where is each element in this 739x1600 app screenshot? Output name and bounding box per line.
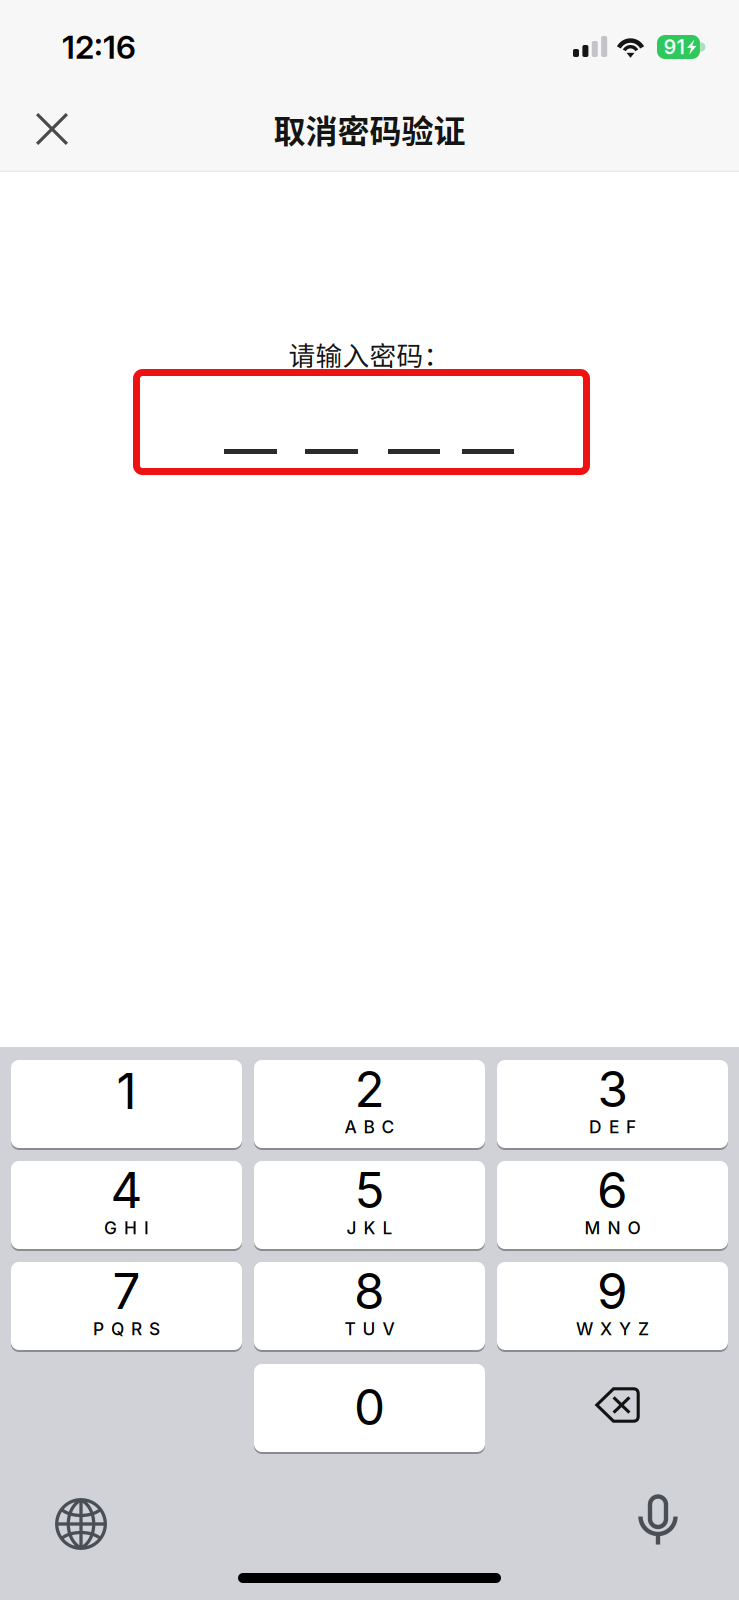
button[interactable]: 3 — [497, 1060, 728, 1148]
staticText: 5 — [354, 1160, 384, 1220]
staticText: PQRS — [93, 1318, 160, 1339]
staticText: 7 — [112, 1261, 140, 1321]
staticText: GHI — [104, 1217, 149, 1238]
button[interactable]: 8 — [254, 1262, 485, 1350]
button[interactable]: Delete — [502, 1361, 733, 1449]
staticText: 6 — [597, 1160, 628, 1220]
staticText: MNO — [584, 1217, 640, 1238]
button[interactable]: Close — [0, 86, 104, 172]
button[interactable]: 2 — [254, 1060, 485, 1148]
staticText: JKL — [346, 1217, 392, 1238]
staticText: 3 — [597, 1059, 627, 1119]
button[interactable]: 9 — [497, 1262, 728, 1350]
button[interactable]: 0 — [254, 1364, 485, 1452]
staticText: 12:16 — [62, 28, 136, 66]
button[interactable]: 6 — [497, 1161, 728, 1249]
staticText: 9 — [597, 1261, 628, 1321]
button[interactable]: 7 — [11, 1262, 242, 1350]
staticText: 取消密码验证 — [273, 106, 465, 152]
button[interactable]: 1 — [11, 1060, 242, 1148]
staticText: TUV — [344, 1318, 394, 1339]
staticText: 91 — [663, 35, 684, 59]
button[interactable]: 4 — [11, 1161, 242, 1249]
staticText: DEF — [589, 1116, 636, 1137]
button[interactable]: Dictate — [609, 1476, 707, 1564]
staticText: 请输入密码： — [288, 335, 450, 373]
button[interactable]: 5 — [254, 1161, 485, 1249]
staticText: 8 — [354, 1261, 385, 1321]
staticText: 0 — [354, 1377, 385, 1437]
staticText: 2 — [354, 1059, 384, 1119]
staticText: 1 — [116, 1061, 136, 1121]
staticText: WXYZ — [576, 1318, 649, 1339]
staticText: ABC — [344, 1116, 394, 1137]
button[interactable]: Switch keyboard — [32, 1480, 130, 1568]
staticText: 4 — [110, 1160, 142, 1220]
